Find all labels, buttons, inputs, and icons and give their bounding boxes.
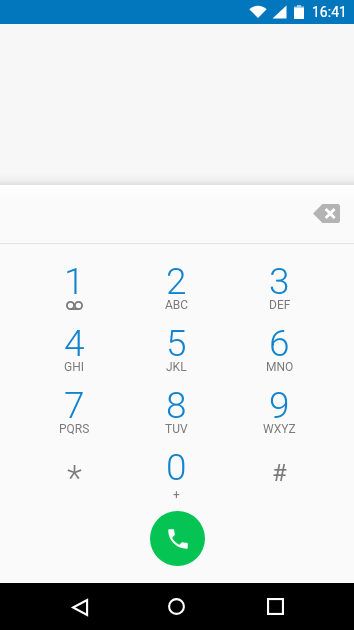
button[interactable]: 3 xyxy=(228,268,331,330)
staticText: 3 xyxy=(269,260,290,303)
staticText: 5 xyxy=(166,322,187,365)
staticText: 0 xyxy=(166,446,187,489)
staticText: DEF xyxy=(269,298,291,312)
button[interactable]: Call xyxy=(150,511,205,566)
staticText: + xyxy=(173,488,180,502)
button[interactable]: Recents xyxy=(226,583,325,630)
button[interactable]: * xyxy=(23,454,125,516)
button[interactable]: 1 xyxy=(23,268,125,330)
button[interactable]: 0 xyxy=(125,454,228,516)
staticText: JKL xyxy=(166,360,187,374)
button[interactable]: Back xyxy=(29,583,127,630)
button[interactable]: 4 xyxy=(23,330,125,392)
button[interactable]: # xyxy=(228,454,331,516)
button[interactable]: 2 xyxy=(125,268,228,330)
button[interactable]: Backspace xyxy=(307,194,345,232)
staticText: 6 xyxy=(269,322,290,365)
staticText: PQRS xyxy=(59,422,90,436)
staticText: 9 xyxy=(269,384,290,427)
staticText: MNO xyxy=(266,360,294,374)
staticText: * xyxy=(67,458,82,499)
button[interactable]: 9 xyxy=(228,392,331,454)
staticText: 1 xyxy=(64,260,85,303)
button[interactable]: 5 xyxy=(125,330,228,392)
staticText: 8 xyxy=(166,384,187,427)
staticText: 16:41 xyxy=(312,4,347,20)
button[interactable]: 8 xyxy=(125,392,228,454)
staticText: 2 xyxy=(166,260,187,303)
button[interactable]: 6 xyxy=(228,330,331,392)
staticText: 7 xyxy=(64,384,85,427)
button[interactable]: Home xyxy=(127,583,226,630)
button[interactable]: 7 xyxy=(23,392,125,454)
staticText: WXYZ xyxy=(263,422,296,436)
staticText: # xyxy=(272,459,287,487)
staticText: GHI xyxy=(64,360,84,374)
staticText: ABC xyxy=(165,298,189,312)
staticText: TUV xyxy=(165,422,188,436)
staticText: 4 xyxy=(64,322,85,365)
